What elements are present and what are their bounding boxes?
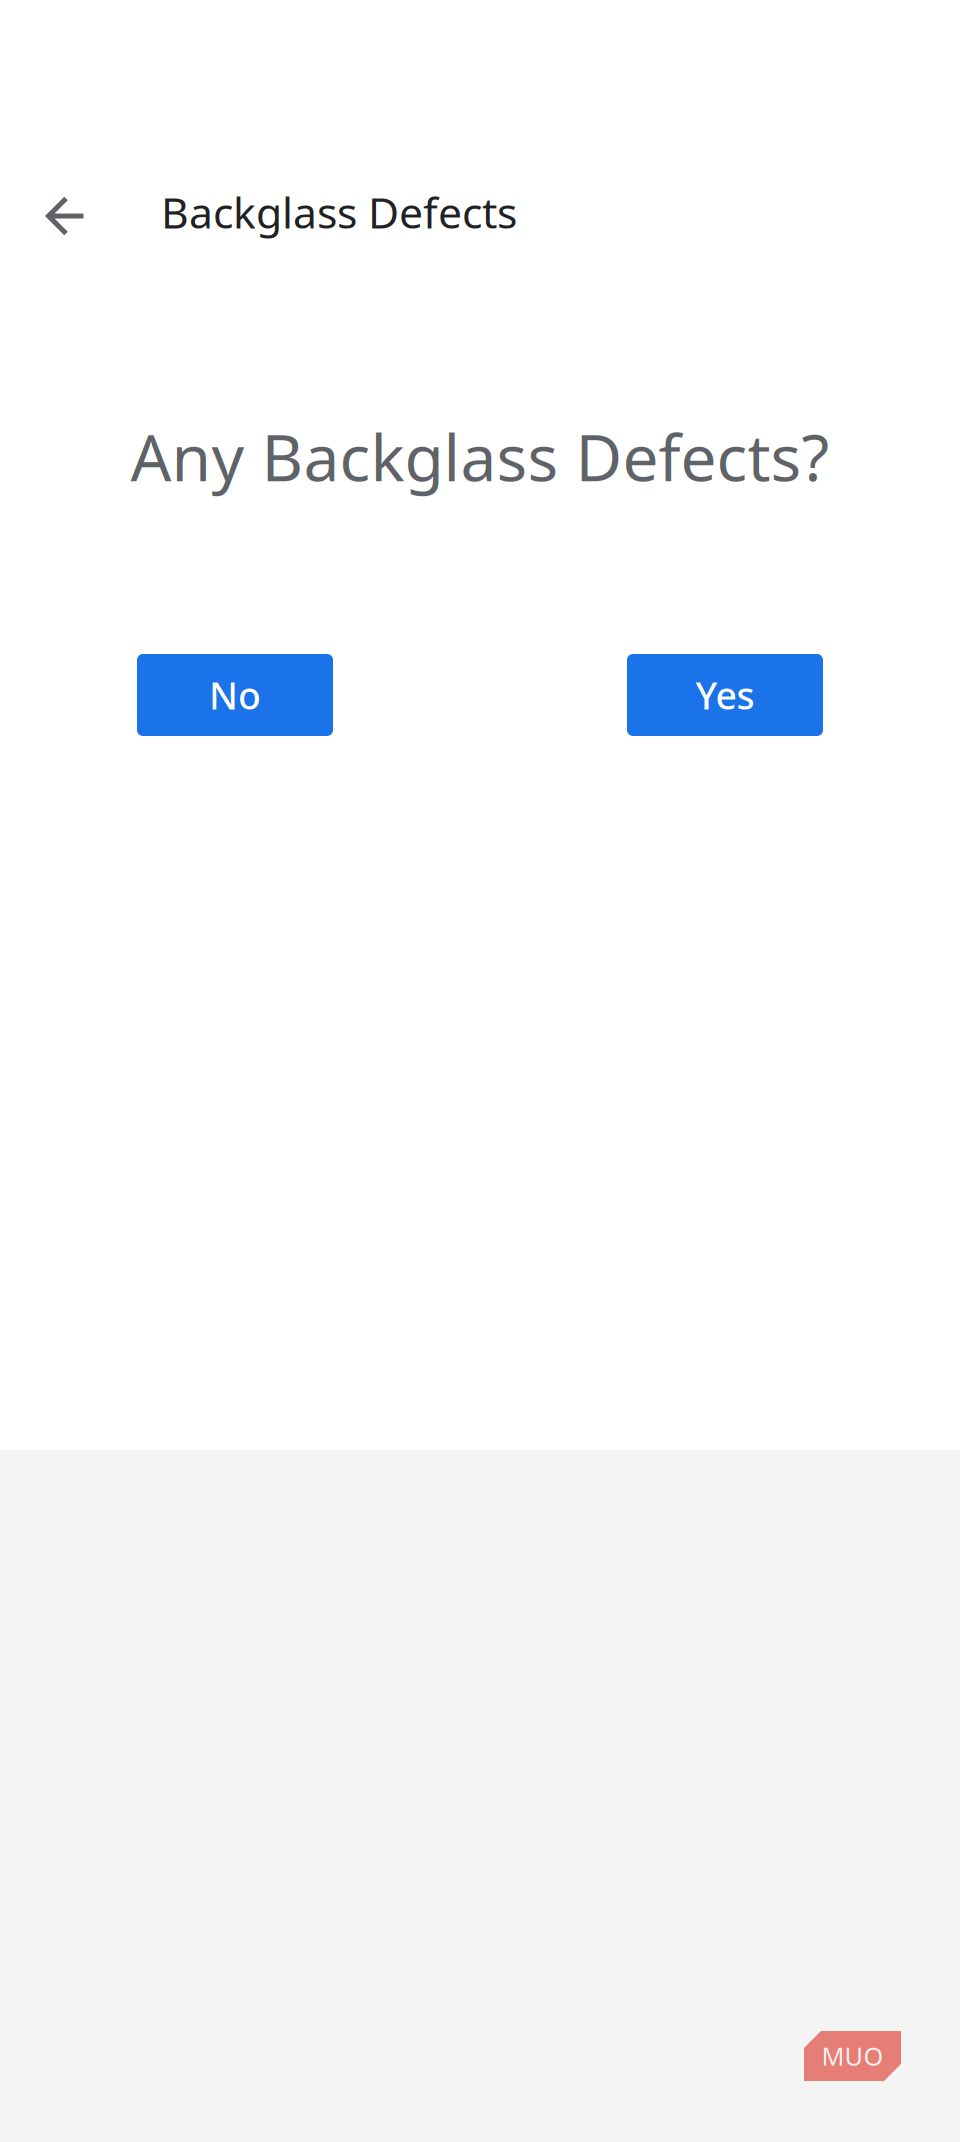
staticText: Backglass Defects: [161, 184, 517, 240]
button[interactable]: No: [137, 654, 333, 736]
staticText: Yes: [695, 670, 754, 720]
staticText: Any Backglass Defects?: [130, 414, 829, 499]
button[interactable]: Yes: [627, 654, 823, 736]
staticText: MUO: [821, 2039, 883, 2073]
button[interactable]: Back: [31, 177, 101, 247]
staticText: No: [209, 670, 261, 720]
